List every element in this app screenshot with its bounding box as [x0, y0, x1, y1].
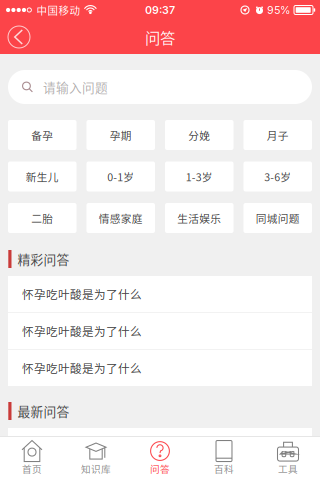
staticText: 孕期 — [110, 127, 132, 143]
button[interactable]: 百科 — [192, 436, 256, 480]
staticText: 中国移动 — [36, 2, 80, 18]
button[interactable]: 同城问题 — [243, 203, 312, 233]
button[interactable]: 月子 — [243, 120, 312, 150]
button[interactable]: 知识库 — [64, 436, 128, 480]
button[interactable]: 怀孕吃叶酸是为了什么 — [8, 350, 312, 386]
button[interactable]: 怀孕吃叶酸是为了什么 — [8, 276, 312, 312]
staticText: 同城问题 — [256, 210, 300, 226]
staticText: 怀孕吃叶酸是为了什么 — [22, 360, 142, 376]
button[interactable]: 二胎 — [8, 203, 76, 233]
staticText: 工具 — [278, 461, 298, 475]
staticText: 二胎 — [31, 210, 53, 226]
staticText: 新生儿 — [26, 169, 59, 184]
staticText: 95% — [267, 3, 290, 16]
button[interactable]: 首页 — [0, 436, 64, 480]
button[interactable]: 0-1岁 — [86, 161, 155, 191]
staticText: 生活娱乐 — [177, 210, 221, 226]
staticText: 备孕 — [31, 127, 53, 143]
staticText: 首页 — [22, 461, 42, 475]
button[interactable]: 备孕 — [8, 120, 76, 150]
staticText: 3-6岁 — [264, 169, 291, 184]
staticText: 情感家庭 — [99, 210, 143, 226]
button[interactable]: 怀孕吃叶酸是为了什么 — [8, 313, 312, 349]
staticText: 知识库 — [81, 461, 111, 475]
button[interactable]: 请输入问题 — [8, 70, 312, 104]
button[interactable]: 生活娱乐 — [165, 203, 233, 233]
staticText: 精彩问答 — [17, 250, 69, 268]
button[interactable]: 情感家庭 — [86, 203, 155, 233]
button[interactable]: 3-6岁 — [243, 161, 312, 191]
staticText: 月子 — [267, 127, 289, 143]
staticText: 09:37 — [145, 3, 175, 16]
staticText: 怀孕吃叶酸是为了什么 — [22, 323, 142, 339]
staticText: 1-3岁 — [186, 169, 213, 184]
button[interactable]: 怀孕吃叶酸是为了什么 — [8, 428, 312, 464]
button[interactable]: 工具 — [256, 436, 320, 480]
staticText: 问答 — [150, 461, 170, 475]
button[interactable]: 怀孕吃叶酸是为了什么 — [8, 465, 312, 480]
staticText: 请输入问题 — [43, 78, 108, 96]
button[interactable]: 孕期 — [86, 120, 155, 150]
staticText: 最新问答 — [17, 402, 69, 420]
button[interactable]: 1-3岁 — [165, 161, 233, 191]
staticText: 百科 — [214, 461, 234, 475]
button[interactable]: 问答 — [128, 436, 192, 480]
staticText: 怀孕吃叶酸是为了什么 — [22, 286, 142, 302]
staticText: 问答 — [145, 26, 175, 48]
staticText: 0-1岁 — [107, 169, 134, 184]
staticText: 怀孕吃叶酸是为了什么 — [22, 438, 142, 454]
button[interactable]: 返回 — [0, 20, 38, 54]
button[interactable]: 新生儿 — [8, 161, 76, 191]
staticText: 分娩 — [188, 127, 210, 143]
button[interactable]: 分娩 — [165, 120, 233, 150]
